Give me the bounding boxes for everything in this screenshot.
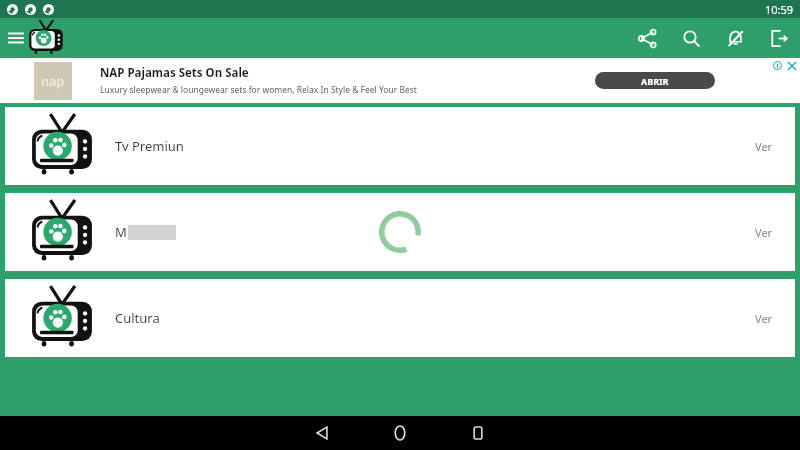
button[interactable]: Tv Premiun <box>5 107 795 185</box>
button[interactable]: Cultura <box>5 279 795 357</box>
staticText: Ver <box>755 311 773 326</box>
staticText: M <box>115 223 127 241</box>
button[interactable]: Search <box>676 23 706 53</box>
staticText: NAP Pajamas Sets On Sale <box>100 65 249 81</box>
staticText: Tv Premiun <box>115 137 184 155</box>
staticText: Luxury sleepwear & loungewear sets for w… <box>100 84 417 96</box>
staticText: Cultura <box>115 309 160 327</box>
staticText: ABRIR <box>641 75 669 87</box>
button[interactable]: Home <box>385 418 415 448</box>
staticText: Ver <box>755 225 773 240</box>
button[interactable]: Notifications off <box>720 23 750 53</box>
button[interactable]: Ad info <box>772 60 783 71</box>
button[interactable]: nap <box>0 58 800 103</box>
button[interactable]: Garra TV <box>26 18 66 58</box>
staticText: 10:59 <box>765 2 794 17</box>
button[interactable]: Menu <box>2 24 30 52</box>
button[interactable]: M <box>5 193 795 271</box>
button[interactable]: ABRIR <box>595 72 715 89</box>
staticText: nap <box>41 72 65 90</box>
button[interactable]: Close ad <box>786 60 797 71</box>
button[interactable]: Back <box>307 418 337 448</box>
button[interactable]: Logout <box>764 23 794 53</box>
button[interactable]: Recents <box>463 418 493 448</box>
button[interactable]: Share <box>632 23 662 53</box>
staticText: Ver <box>755 139 773 154</box>
